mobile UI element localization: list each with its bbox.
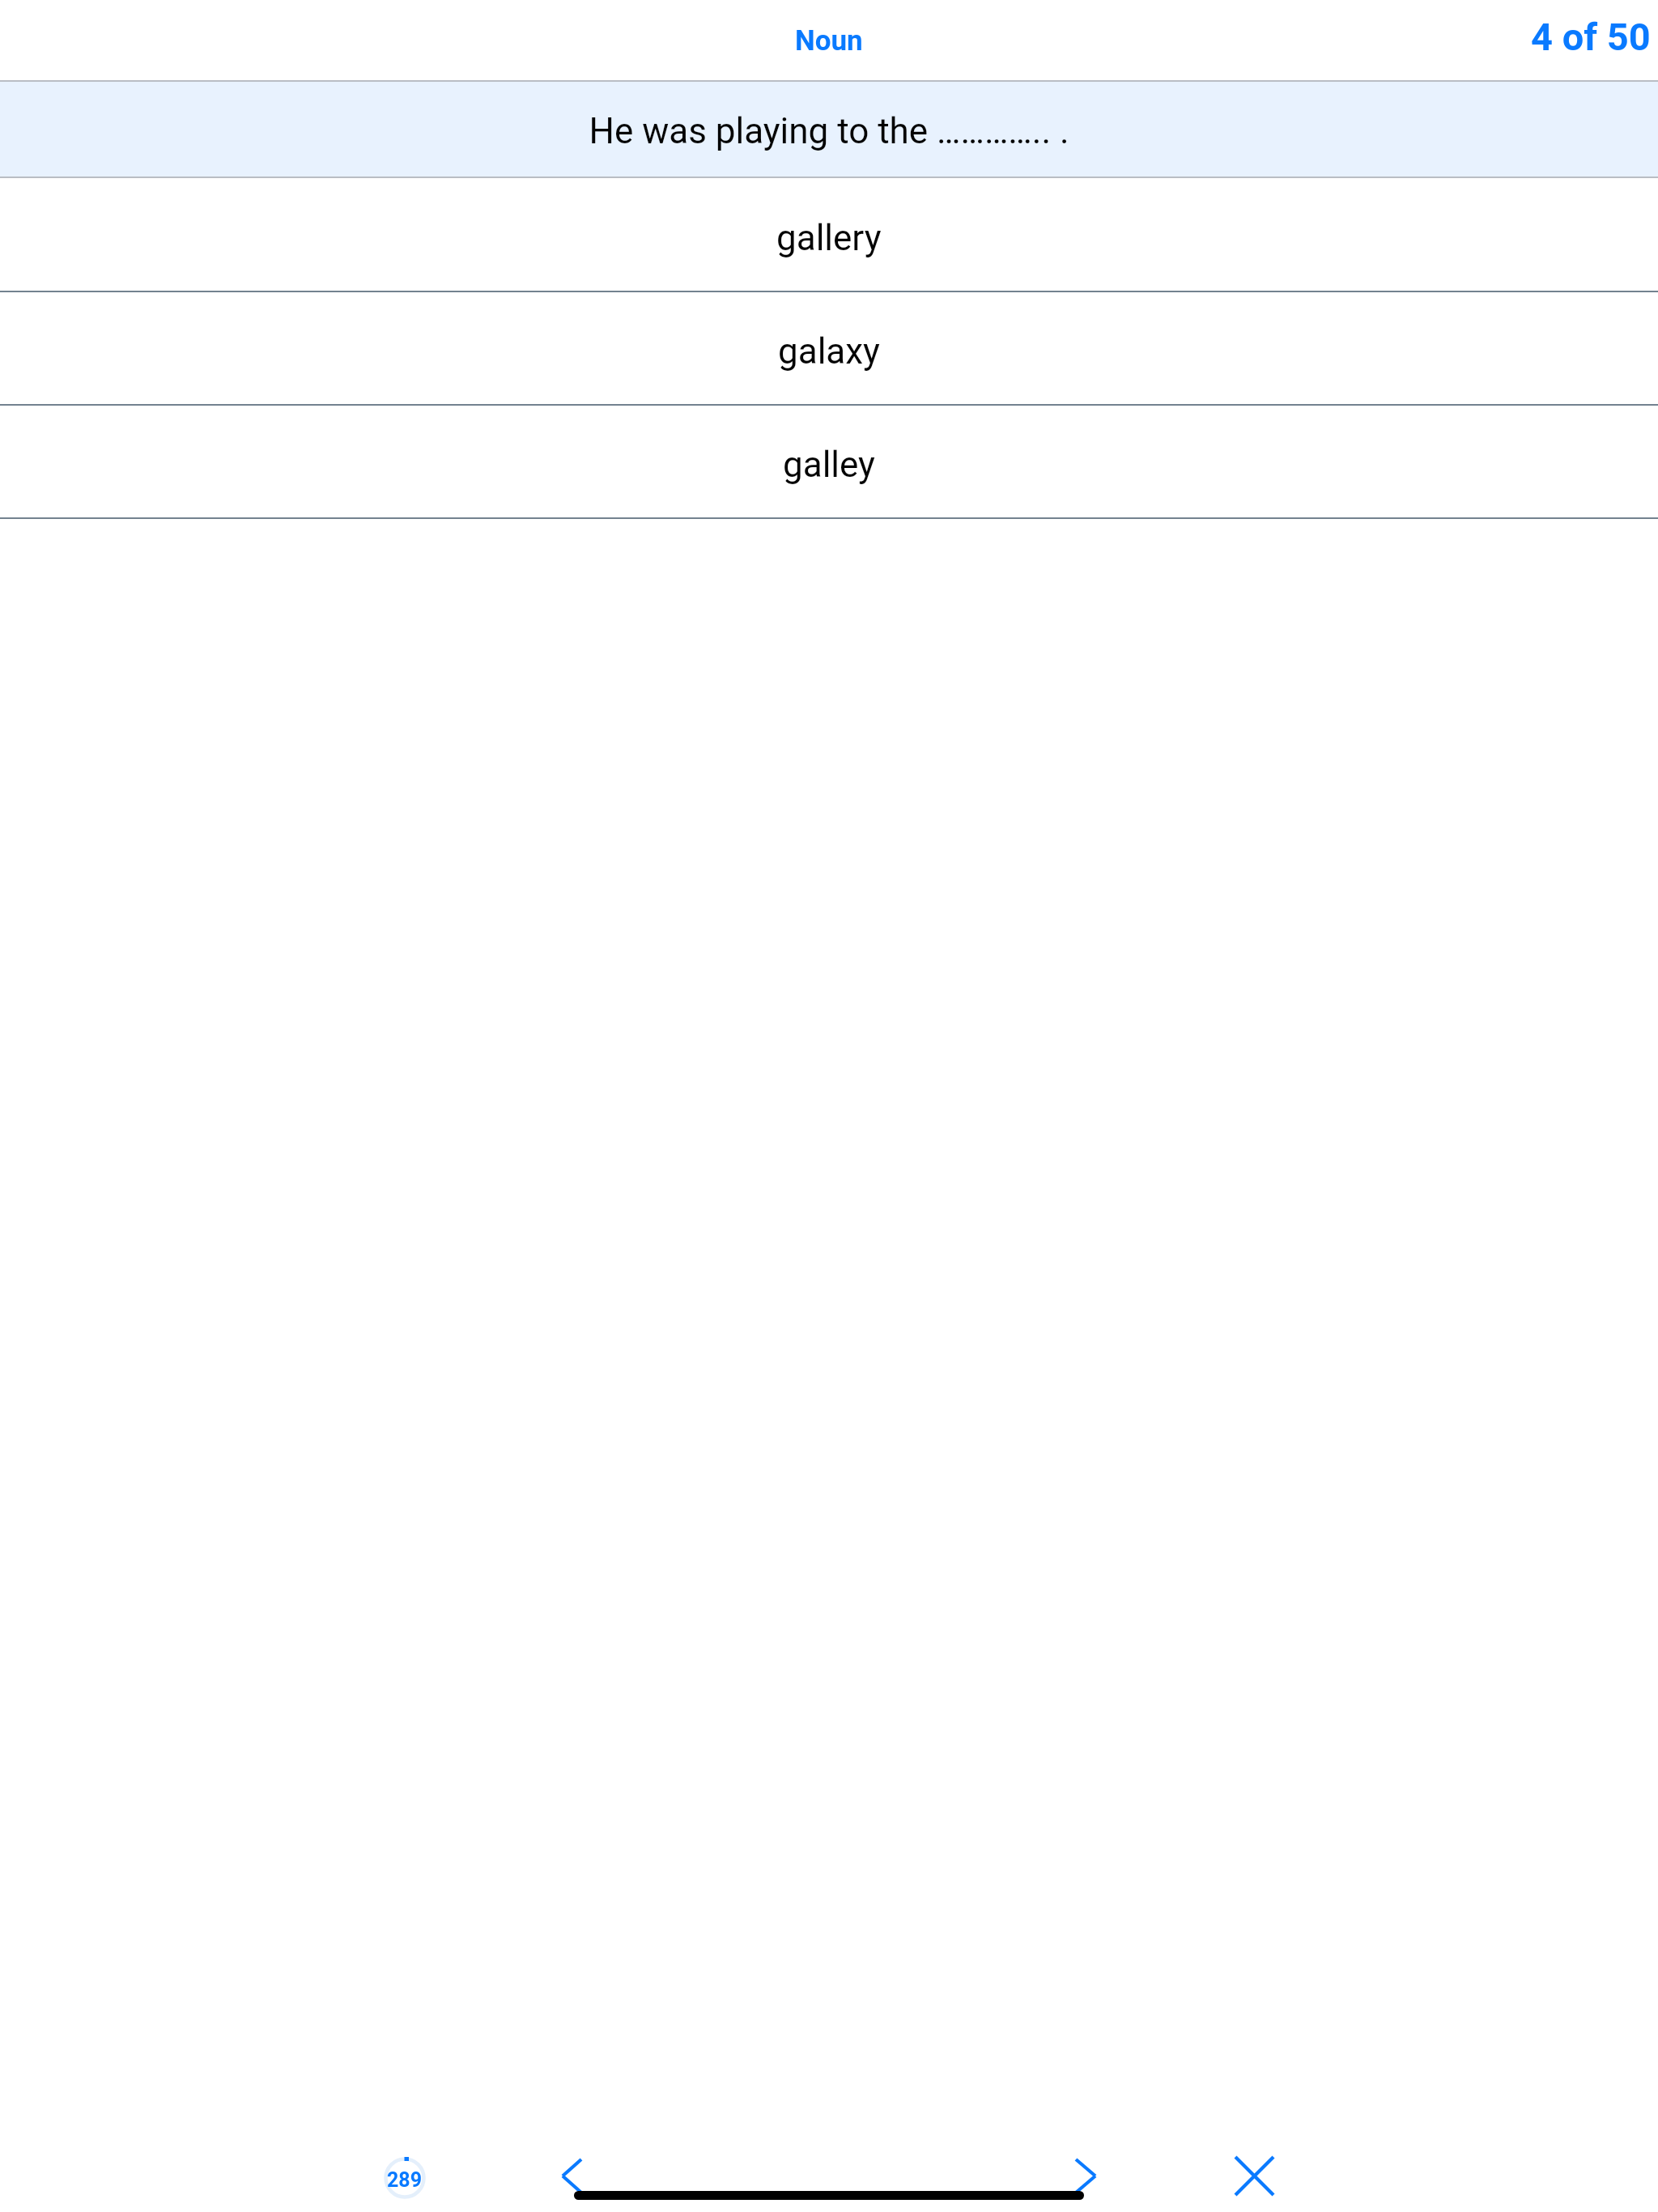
staticText: 289 — [387, 2168, 423, 2192]
button[interactable]: 4 of 50 — [1508, 11, 1658, 71]
staticText: galley — [783, 444, 875, 486]
staticText: galaxy — [778, 330, 880, 372]
button[interactable]: Previous — [551, 2146, 597, 2192]
button[interactable]: galley — [0, 406, 1658, 517]
button[interactable]: Time remaining 289 — [379, 2150, 431, 2201]
button[interactable]: galaxy — [0, 292, 1658, 404]
staticText: 4 of 50 — [1531, 15, 1651, 59]
staticText: Noun — [795, 24, 863, 57]
button[interactable]: Noun — [772, 13, 886, 69]
button[interactable]: Close — [1229, 2150, 1281, 2202]
staticText: gallery — [776, 217, 882, 259]
button[interactable]: Next — [1065, 2146, 1110, 2192]
staticText: He was playing to the ………….. . — [589, 110, 1069, 152]
button[interactable]: gallery — [0, 178, 1658, 291]
